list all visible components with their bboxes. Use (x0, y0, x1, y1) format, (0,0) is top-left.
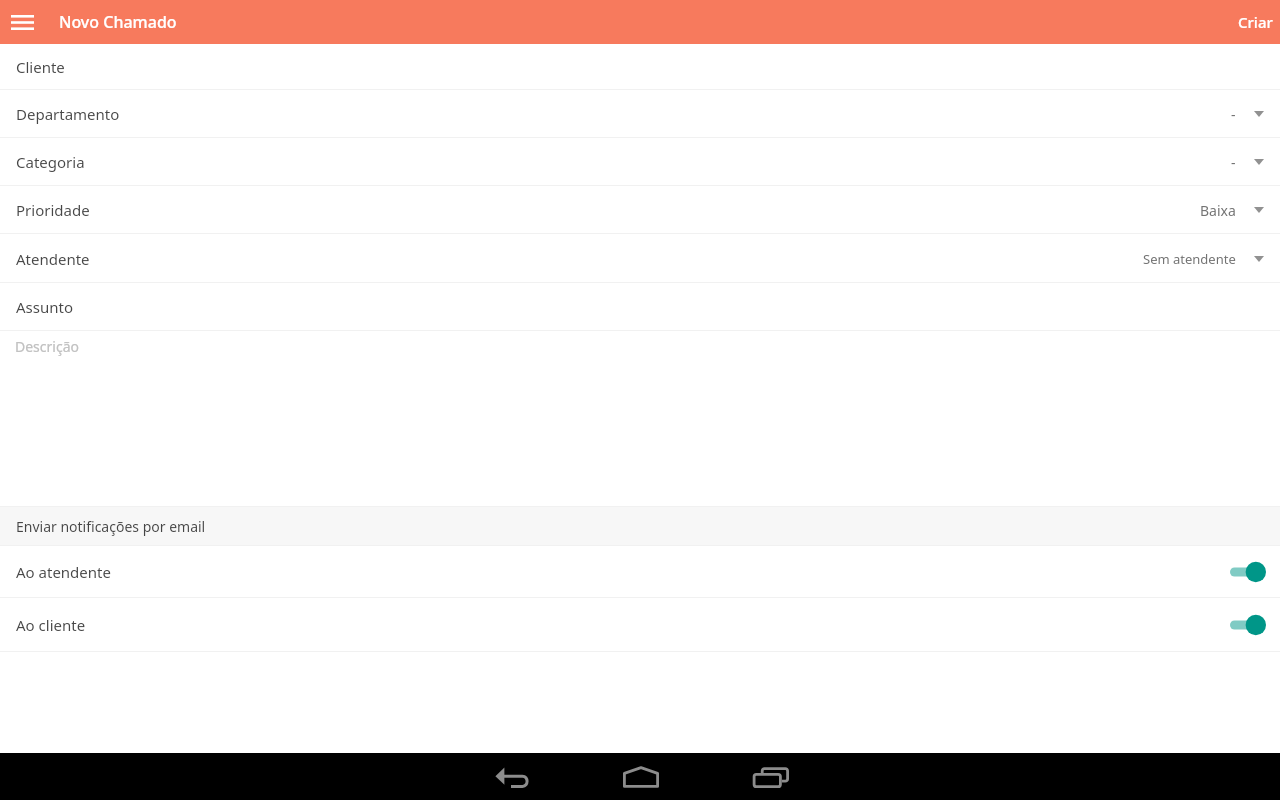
staticText: Assunto (16, 297, 73, 317)
button[interactable]: Criar (1224, 0, 1280, 44)
staticText: Ao cliente (16, 615, 86, 635)
staticText: Criar (1238, 12, 1273, 32)
button[interactable]: Ao cliente (0, 598, 1280, 652)
staticText: Novo Chamado (59, 11, 177, 33)
button[interactable]: Recent apps (737, 753, 802, 800)
staticText: Cliente (16, 57, 65, 77)
button[interactable]: Prioridade (0, 186, 1280, 234)
staticText: Departamento (16, 104, 120, 124)
button[interactable]: Categoria (0, 138, 1280, 186)
button[interactable]: Home (608, 753, 673, 800)
staticText: Descrição (15, 337, 79, 356)
button[interactable]: Departamento (0, 90, 1280, 138)
staticText: - (1231, 105, 1236, 124)
staticText: Categoria (16, 152, 85, 172)
button[interactable]: Ao atendente (0, 546, 1280, 598)
staticText: Sem atendente (1143, 250, 1236, 268)
staticText: Prioridade (16, 200, 90, 220)
staticText: - (1231, 153, 1236, 172)
staticText: Enviar notificações por email (16, 517, 206, 536)
staticText: Baixa (1200, 201, 1236, 220)
button[interactable]: Atendente (0, 234, 1280, 283)
button[interactable]: Back (479, 753, 544, 800)
button[interactable]: Open navigation drawer (0, 0, 44, 44)
staticText: Atendente (16, 249, 90, 269)
staticText: Ao atendente (16, 562, 111, 582)
button[interactable]: Assunto (0, 283, 1280, 331)
button[interactable]: Cliente (0, 44, 1280, 90)
